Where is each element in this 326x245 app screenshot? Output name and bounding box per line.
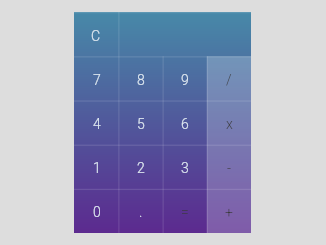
button[interactable]: Add xyxy=(207,189,251,233)
button[interactable]: C xyxy=(74,12,118,57)
staticText: + xyxy=(225,204,233,220)
staticText: C xyxy=(91,28,101,44)
staticText: 5 xyxy=(137,116,145,132)
staticText: 3 xyxy=(181,160,189,176)
button[interactable]: = xyxy=(163,189,207,233)
button[interactable]: 9 xyxy=(163,57,207,101)
staticText: 7 xyxy=(93,72,101,88)
button[interactable]: 1 xyxy=(74,145,119,189)
button[interactable]: 2 xyxy=(119,145,163,189)
button[interactable]: Divide xyxy=(207,57,251,101)
staticText: - xyxy=(227,160,232,176)
staticText: 0 xyxy=(93,204,101,220)
staticText: 4 xyxy=(93,116,101,132)
button[interactable]: 8 xyxy=(119,57,163,101)
button[interactable]: Display xyxy=(118,12,251,57)
staticText: 8 xyxy=(137,72,145,88)
button[interactable]: . xyxy=(119,189,163,233)
staticText: 9 xyxy=(181,72,189,88)
button[interactable]: 7 xyxy=(74,57,119,101)
button[interactable]: 4 xyxy=(74,101,119,145)
staticText: x xyxy=(226,116,233,132)
staticText: . xyxy=(139,204,143,220)
button[interactable]: Subtract xyxy=(207,145,251,189)
button[interactable]: 5 xyxy=(119,101,163,145)
staticText: = xyxy=(181,204,189,220)
staticText: 2 xyxy=(137,160,145,176)
staticText: 6 xyxy=(181,116,189,132)
button[interactable]: 6 xyxy=(163,101,207,145)
button[interactable]: Multiply xyxy=(207,101,251,145)
staticText: 1 xyxy=(93,160,101,176)
button[interactable]: 3 xyxy=(163,145,207,189)
staticText: / xyxy=(226,72,232,88)
button[interactable]: 0 xyxy=(74,189,119,233)
